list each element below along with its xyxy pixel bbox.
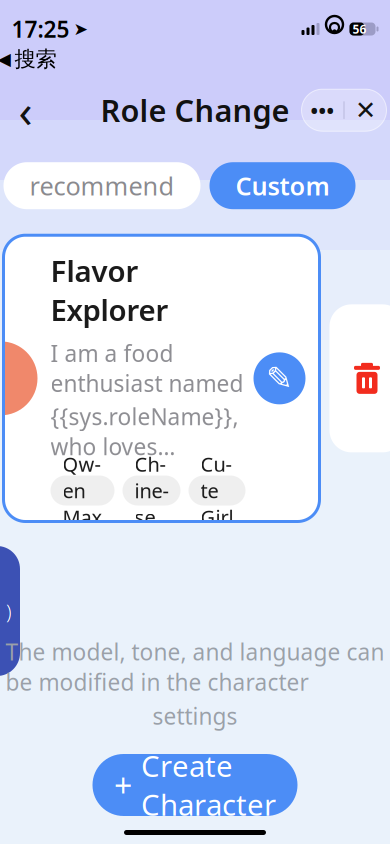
staticText: ◀ [0,49,10,69]
staticText: Role Change [100,90,289,130]
staticText: ‹ [18,80,32,140]
staticText: ✎ [266,360,293,396]
button[interactable]: Delete character [329,304,390,452]
button[interactable]: Edit character [253,352,305,404]
staticText: Cute Girl [200,451,233,530]
staticText: Custom [235,169,329,202]
button[interactable]: recommend [3,162,200,209]
staticText: ✕ [355,96,376,125]
staticText: Chinese [134,451,168,530]
staticText: ➤ [73,19,88,39]
staticText: 56 [352,21,366,37]
staticText: The model, tone, and language can be mod… [5,637,384,697]
staticText: Flavor Explorer [50,251,168,329]
button[interactable]: Flavor Explorer [3,235,319,521]
staticText: Create Character [141,746,276,824]
staticText: settings [152,701,237,731]
staticText: {{sys.roleName}}, who loves… [50,401,238,461]
staticText: Qwen Max [62,451,102,530]
staticText: + [114,764,132,806]
staticText: ) [6,598,12,624]
button[interactable]: Back [3,88,47,132]
button[interactable]: Close [344,92,386,128]
staticText: 搜索 [14,46,56,72]
staticText: recommend [29,169,174,202]
staticText: ••• [310,97,334,123]
button[interactable]: + [92,754,297,816]
staticText: 17:25 [11,14,69,44]
button[interactable]: Custom [209,162,355,209]
staticText: I am a food enthusiast named [50,338,243,398]
button[interactable]: More options [301,92,343,128]
